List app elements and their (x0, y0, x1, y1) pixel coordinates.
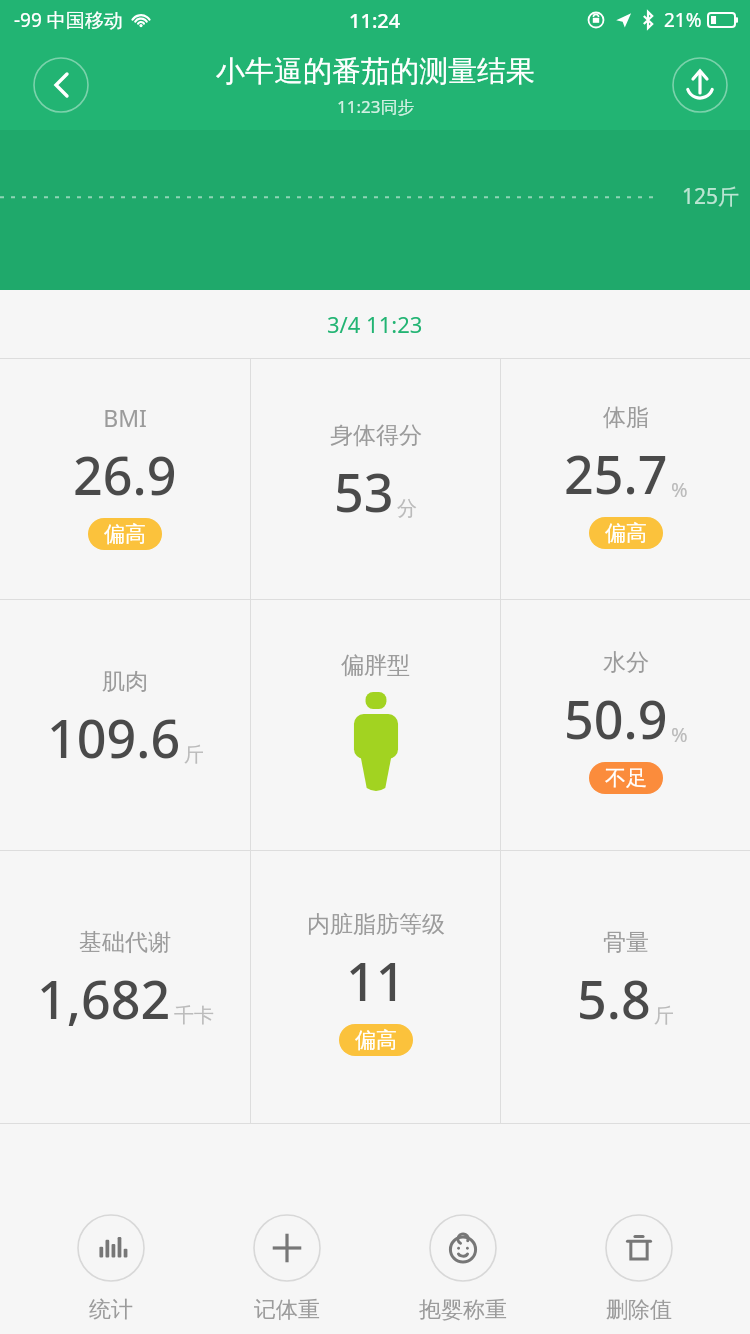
staticText: % (671, 476, 688, 503)
staticText: 分 (397, 496, 417, 521)
staticText: 109.6 (47, 702, 181, 773)
button[interactable]: 记体重 (222, 1192, 352, 1334)
staticText: 统计 (89, 1296, 133, 1324)
staticText: 骨量 (603, 928, 649, 957)
staticText: 内脏脂肪等级 (307, 910, 445, 939)
staticText: 53 (334, 456, 394, 527)
staticText: 删除值 (606, 1296, 672, 1324)
staticText: 1,682 (37, 963, 171, 1034)
staticText: 偏高 (104, 521, 146, 547)
button[interactable]: 抱婴称重 (398, 1192, 528, 1334)
staticText: BMI (103, 402, 147, 433)
staticText: 不足 (605, 765, 647, 791)
staticText: 26.9 (73, 439, 177, 510)
staticText: 3/4 11:23 (327, 309, 423, 339)
button[interactable]: 骨量 (501, 851, 750, 1123)
staticText: 50.9 (564, 683, 668, 754)
button[interactable]: 体脂 (501, 359, 750, 599)
staticText: 斤 (654, 1003, 674, 1028)
staticText: 125斤 (682, 182, 740, 211)
button[interactable]: Share (672, 57, 728, 113)
button[interactable]: Back (33, 57, 89, 113)
staticText: 记体重 (254, 1296, 320, 1324)
staticText: 5.8 (577, 963, 651, 1034)
staticText: 水分 (603, 648, 649, 677)
staticText: 25.7 (564, 438, 668, 509)
staticText: 抱婴称重 (419, 1296, 507, 1324)
staticText: 偏高 (605, 520, 647, 546)
button[interactable]: 统计 (46, 1192, 176, 1334)
button[interactable]: 肌肉 (0, 600, 250, 850)
staticText: 基础代谢 (79, 928, 171, 957)
button[interactable]: 身体得分 (251, 359, 500, 599)
staticText: 21% (664, 7, 702, 33)
staticText: 偏胖型 (341, 651, 410, 680)
staticText: 小牛逼的番茄的测量结果 (216, 53, 535, 90)
staticText: -99 中国移动 (14, 7, 123, 33)
staticText: 11:23同步 (337, 95, 415, 118)
staticText: 体脂 (603, 403, 649, 432)
staticText: 千卡 (174, 1003, 214, 1028)
button[interactable]: BMI (0, 359, 250, 599)
staticText: 偏高 (355, 1027, 397, 1053)
staticText: 11 (346, 945, 406, 1016)
staticText: % (671, 721, 688, 748)
button[interactable]: 删除值 (574, 1192, 704, 1334)
staticText: 斤 (184, 742, 204, 767)
button[interactable]: 水分 (501, 600, 750, 850)
button[interactable]: 基础代谢 (0, 851, 250, 1123)
button[interactable]: 内脏脂肪等级 (251, 851, 500, 1123)
staticText: 11:24 (349, 7, 401, 34)
staticText: 肌肉 (102, 667, 148, 696)
staticText: 身体得分 (330, 421, 422, 450)
button[interactable]: 偏胖型 (251, 600, 500, 850)
